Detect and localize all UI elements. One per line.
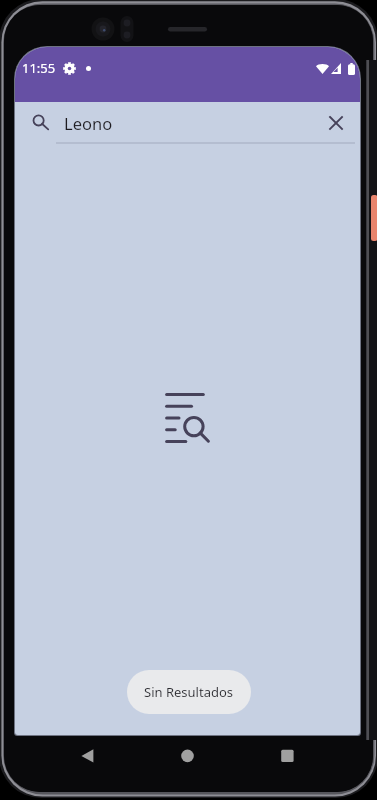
staticText: Leono [64,112,113,134]
staticText: 11:55 [22,59,56,74]
staticText: Sin Resultados [144,683,234,701]
button[interactable]: Search [27,109,55,137]
button[interactable]: Sin Resultados [127,670,251,714]
button[interactable]: Clear search [321,108,351,138]
